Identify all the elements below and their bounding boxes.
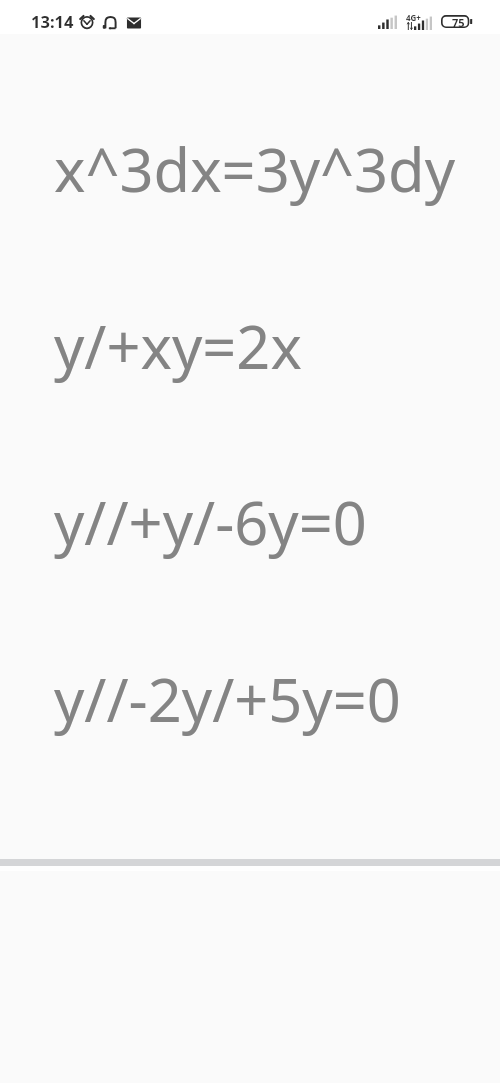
other: Unread mail bbox=[126, 15, 142, 31]
staticText: y//-2y/+5y=0 bbox=[54, 658, 401, 739]
button[interactable]: y//-2y/+5y=0 bbox=[0, 626, 500, 802]
button[interactable]: y//+y/-6y=0 bbox=[0, 449, 500, 625]
staticText: y/+xy=2x bbox=[54, 305, 302, 386]
staticText: 13:14 bbox=[31, 10, 74, 32]
staticText: y//+y/-6y=0 bbox=[54, 481, 367, 562]
button[interactable]: x^3dx=3y^3dy bbox=[0, 96, 500, 272]
other: Alarm set bbox=[79, 13, 95, 29]
staticText: 4G+ bbox=[406, 12, 421, 23]
other: 4G+ mobile data, SIM 2 signal strength bbox=[406, 13, 433, 30]
other: SIM 1 signal strength bbox=[378, 15, 397, 29]
staticText: 75 bbox=[452, 15, 465, 28]
other: Headset connected bbox=[102, 14, 119, 31]
staticText: x^3dx=3y^3dy bbox=[54, 128, 456, 209]
button[interactable]: y/+xy=2x bbox=[0, 273, 500, 449]
other: Battery 75 percent bbox=[441, 15, 473, 28]
